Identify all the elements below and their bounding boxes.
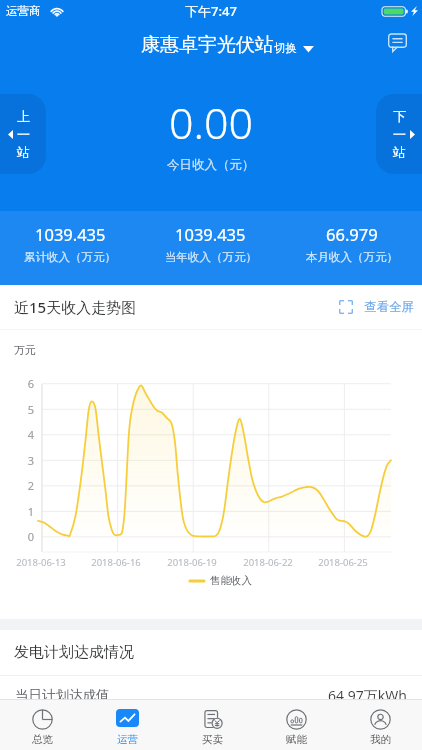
staticText: 赋能: [286, 733, 307, 746]
button[interactable]: Messages: [386, 32, 410, 56]
staticText: 4: [20, 427, 34, 442]
staticText: 运营商: [6, 4, 41, 18]
staticText: 康惠卓宇光伏站: [141, 33, 274, 57]
button[interactable]: 上一站: [0, 94, 46, 174]
button[interactable]: 查看全屏: [339, 299, 414, 315]
staticText: 3: [20, 453, 34, 468]
staticText: 64.97万kWh: [328, 686, 407, 705]
staticText: 2018-06-22: [233, 556, 303, 569]
button[interactable]: 买卖: [170, 699, 254, 750]
button[interactable]: 1039.435: [140, 211, 281, 285]
staticText: 近15天收入走势图: [14, 297, 137, 317]
staticText: 2018-06-16: [81, 556, 151, 569]
staticText: 1039.435: [175, 223, 246, 245]
staticText: 累计收入（万元）: [24, 250, 116, 264]
staticText: 一: [393, 126, 406, 142]
staticText: 下午7:47: [185, 2, 237, 20]
staticText: 站: [17, 144, 30, 160]
staticText: 2018-06-19: [157, 556, 227, 569]
staticText: 发电计划达成情况: [14, 643, 134, 662]
staticText: 本月收入（万元）: [306, 250, 398, 264]
staticText: 售能收入: [210, 574, 252, 587]
staticText: 上: [17, 108, 30, 124]
staticText: 买卖: [202, 733, 223, 746]
staticText: 当日计划达成值: [15, 687, 110, 704]
staticText: 下: [393, 108, 406, 124]
staticText: 2018-06-25: [308, 556, 378, 569]
staticText: 66.979: [326, 223, 378, 245]
button[interactable]: 下一站: [376, 94, 422, 174]
staticText: 切换: [274, 41, 297, 55]
staticText: 0: [20, 529, 34, 544]
button[interactable]: 我的: [338, 699, 422, 750]
button[interactable]: 总览: [0, 699, 85, 750]
staticText: 我的: [370, 733, 391, 746]
button[interactable]: 康惠卓宇光伏站: [141, 33, 314, 57]
button[interactable]: 66.979: [281, 211, 422, 285]
staticText: 5: [20, 402, 34, 417]
button[interactable]: 运营: [85, 699, 170, 750]
staticText: 今日收入（元）: [167, 157, 255, 173]
staticText: 2018-06-13: [6, 556, 76, 569]
staticText: 站: [393, 144, 406, 160]
staticText: 总览: [32, 733, 53, 746]
button[interactable]: 赋能: [254, 699, 338, 750]
staticText: 运营: [117, 733, 138, 746]
button[interactable]: 1039.435: [0, 211, 140, 285]
staticText: 查看全屏: [364, 299, 414, 315]
staticText: 1039.435: [35, 223, 106, 245]
staticText: 6: [20, 376, 34, 391]
staticText: 2: [20, 478, 34, 493]
staticText: 万元: [14, 343, 36, 357]
staticText: 0.00: [169, 93, 254, 152]
staticText: 1: [20, 504, 34, 519]
staticText: 当年收入（万元）: [165, 250, 257, 264]
staticText: 一: [17, 126, 30, 142]
